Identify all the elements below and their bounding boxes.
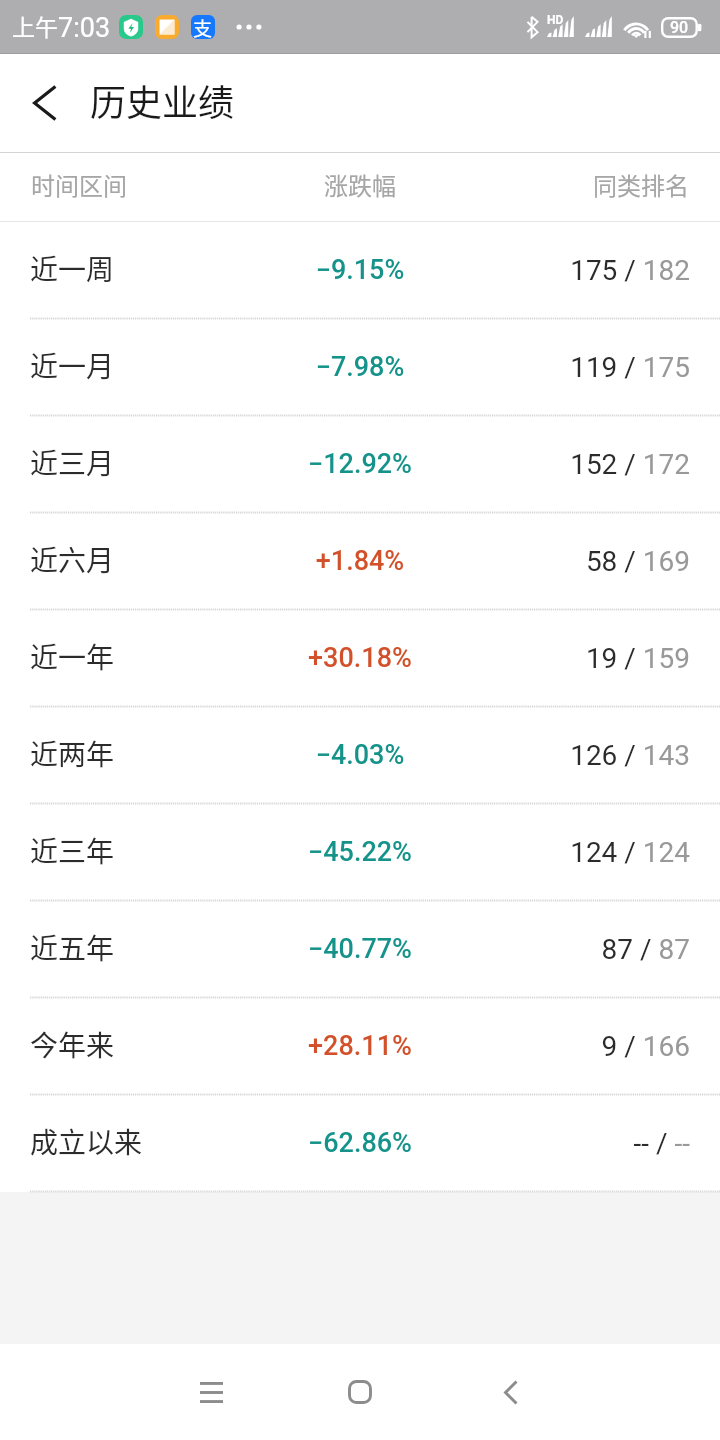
staticText: 近一年	[30, 636, 240, 677]
staticText: 历史业绩	[90, 74, 235, 126]
staticText: 87 / 87	[480, 933, 690, 966]
button[interactable]: 近两年	[0, 707, 720, 804]
button[interactable]: 近六月	[0, 513, 720, 610]
staticText: 7:03	[58, 12, 111, 44]
button[interactable]: Back	[451, 1344, 571, 1440]
staticText: 58 / 169	[480, 545, 690, 578]
staticText: 近三月	[30, 442, 240, 483]
staticText: 90	[670, 18, 689, 37]
button[interactable]: Recents	[151, 1344, 271, 1440]
button[interactable]: 近一年	[0, 610, 720, 707]
staticText: 152 / 172	[480, 448, 690, 481]
button[interactable]: 近五年	[0, 901, 720, 998]
staticText: 支	[193, 15, 213, 38]
button[interactable]: 近一周	[0, 222, 720, 319]
button[interactable]: Home	[300, 1344, 420, 1440]
staticText: −4.03%	[240, 739, 480, 771]
staticText: 近一周	[30, 248, 240, 289]
staticText: 126 / 143	[480, 739, 690, 772]
staticText: +28.11%	[240, 1030, 480, 1062]
staticText: 上午	[12, 9, 58, 42]
staticText: 9 / 166	[480, 1030, 690, 1063]
staticText: 124 / 124	[480, 836, 690, 869]
button[interactable]: 成立以来	[0, 1095, 720, 1192]
staticText: 19 / 159	[480, 642, 690, 675]
staticText: 近一月	[30, 345, 240, 386]
staticText: −9.15%	[240, 254, 480, 286]
staticText: -- / --	[480, 1127, 690, 1160]
staticText: 今年来	[30, 1024, 240, 1065]
staticText: HD	[547, 13, 564, 27]
staticText: 近三年	[30, 830, 240, 871]
staticText: −7.98%	[240, 351, 480, 383]
staticText: −62.86%	[240, 1127, 480, 1159]
button[interactable]: 返回	[8, 58, 80, 148]
staticText: 119 / 175	[480, 351, 690, 384]
staticText: 175 / 182	[480, 254, 690, 287]
staticText: +30.18%	[240, 642, 480, 674]
staticText: −12.92%	[240, 448, 480, 480]
button[interactable]: 近三月	[0, 416, 720, 513]
staticText: −45.22%	[240, 836, 480, 868]
staticText: 成立以来	[30, 1121, 240, 1162]
button[interactable]: 近三年	[0, 804, 720, 901]
staticText: 近五年	[30, 927, 240, 968]
button[interactable]: 近一月	[0, 319, 720, 416]
staticText: +1.84%	[240, 545, 480, 577]
staticText: 近六月	[30, 539, 240, 580]
staticText: 同类排名	[480, 167, 689, 202]
staticText: 时间区间	[31, 167, 240, 202]
staticText: 涨跌幅	[240, 167, 480, 202]
staticText: 近两年	[30, 733, 240, 774]
staticText: −40.77%	[240, 933, 480, 965]
button[interactable]: 今年来	[0, 998, 720, 1095]
